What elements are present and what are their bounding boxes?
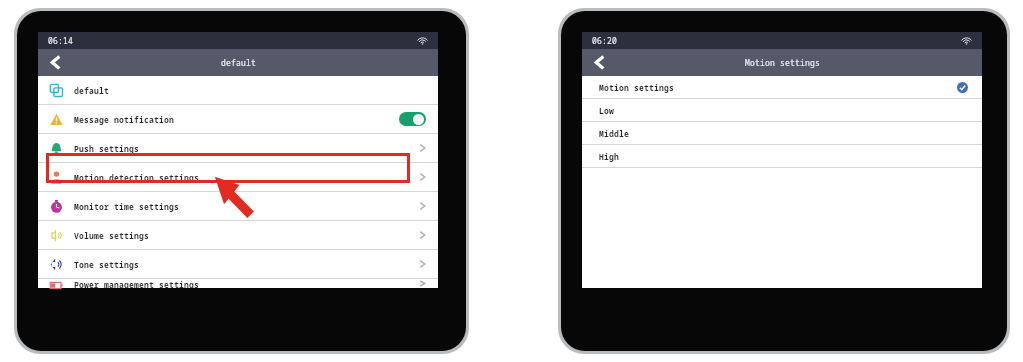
button[interactable]: Power management settings — [38, 279, 438, 288]
staticText: Monitor time settings — [74, 201, 419, 212]
staticText: 06:14 — [48, 35, 73, 46]
staticText: default — [221, 57, 256, 68]
button[interactable]: High — [582, 145, 982, 167]
button[interactable]: Volume settings — [38, 221, 438, 249]
button[interactable]: default — [38, 76, 438, 104]
staticText: Motion detection settings — [74, 172, 419, 183]
staticText: Motion settings — [745, 57, 820, 68]
button[interactable]: Low — [582, 99, 982, 121]
button[interactable]: Motion settings — [582, 76, 982, 98]
button[interactable]: Monitor time settings — [38, 192, 438, 220]
other: Selected — [957, 82, 968, 93]
staticText: default — [74, 85, 426, 96]
button[interactable]: Message notification — [38, 105, 438, 133]
other: Wi-Fi signal — [961, 35, 972, 46]
other: Wi-Fi signal — [417, 35, 428, 46]
staticText: Tone settings — [74, 259, 419, 270]
staticText: Motion settings — [599, 82, 957, 93]
button[interactable]: Message notification toggle, on — [399, 112, 426, 126]
button[interactable]: Motion detection settings — [38, 163, 438, 191]
staticText: 06:20 — [592, 35, 617, 46]
staticText: High — [599, 151, 968, 162]
staticText: Low — [599, 105, 968, 116]
staticText: Message notification — [74, 114, 399, 125]
button[interactable]: Back — [582, 49, 616, 76]
button[interactable]: Push settings — [38, 134, 438, 162]
button[interactable]: Middle — [582, 122, 982, 144]
staticText: Push settings — [74, 143, 419, 154]
staticText: Power management settings — [74, 279, 419, 288]
button[interactable]: Back — [38, 49, 72, 76]
button[interactable]: Tone settings — [38, 250, 438, 278]
staticText: Volume settings — [74, 230, 419, 241]
staticText: Middle — [599, 128, 968, 139]
